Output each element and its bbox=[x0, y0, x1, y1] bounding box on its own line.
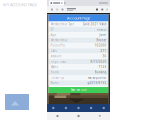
button[interactable]: Saved bbox=[72, 104, 85, 112]
button[interactable]: Home bbox=[47, 104, 60, 112]
staticText: 7123 bbox=[98, 65, 106, 69]
staticText: Gold 2021 Valid bbox=[82, 22, 106, 26]
button[interactable]: Points Pts bbox=[48, 43, 108, 48]
staticText: Booking bbox=[94, 71, 106, 74]
staticText: Bronze bbox=[96, 38, 106, 42]
staticText: Take me out bbox=[70, 88, 86, 92]
staticText: Amount bbox=[50, 54, 61, 58]
button[interactable]: Create Up bbox=[48, 75, 108, 80]
button[interactable]: Membership bbox=[48, 37, 108, 43]
staticText: Membership bbox=[50, 38, 67, 42]
button[interactable]: Account Page bbox=[48, 14, 108, 21]
staticText: 36 bbox=[102, 54, 106, 58]
staticText: 271 bbox=[100, 49, 106, 53]
button[interactable]: Take me out bbox=[48, 87, 108, 93]
staticText: q2019/91V2 bbox=[87, 81, 106, 85]
button[interactable]: Myths bbox=[48, 64, 108, 70]
staticText: Points Pts bbox=[50, 44, 64, 47]
button[interactable]: Age bbox=[48, 32, 108, 37]
button[interactable]: Search bbox=[60, 104, 72, 112]
button[interactable]: Menu bbox=[97, 104, 110, 112]
staticText: Create Up bbox=[50, 76, 64, 79]
staticText: Regn. Date bbox=[50, 60, 66, 63]
staticText: MY ACCOUNT PAGE bbox=[3, 2, 37, 7]
staticText: Books bbox=[50, 71, 58, 74]
button[interactable]: Back bbox=[89, 112, 110, 120]
button[interactable]: Membership Type bbox=[48, 21, 108, 27]
staticText: 8/19/2020 bbox=[90, 60, 106, 63]
staticText: Nat Sequence bbox=[87, 76, 106, 79]
staticText: Calls bbox=[50, 49, 56, 53]
button[interactable]: Alerts bbox=[85, 104, 97, 112]
staticText: 102000 bbox=[94, 44, 106, 47]
button[interactable]: Notes bbox=[48, 80, 108, 86]
button[interactable]: ID bbox=[48, 27, 108, 32]
staticText: Account Page bbox=[67, 15, 90, 21]
button[interactable]: Recents bbox=[47, 112, 68, 120]
button[interactable]: Regn. Date bbox=[48, 59, 108, 64]
staticText: Membership Type bbox=[50, 22, 74, 26]
button[interactable]: Calls bbox=[48, 48, 108, 53]
button[interactable]: Books bbox=[48, 70, 108, 75]
staticText: Myths bbox=[50, 65, 57, 69]
staticText: Rosetti bbox=[96, 28, 106, 31]
staticText: Age bbox=[50, 33, 56, 37]
staticText: Jorel bbox=[99, 33, 106, 37]
staticText: ID bbox=[50, 28, 53, 31]
staticText: Notes bbox=[50, 81, 58, 85]
button[interactable]: Home bbox=[68, 112, 89, 120]
button[interactable]: Amount bbox=[48, 54, 108, 59]
